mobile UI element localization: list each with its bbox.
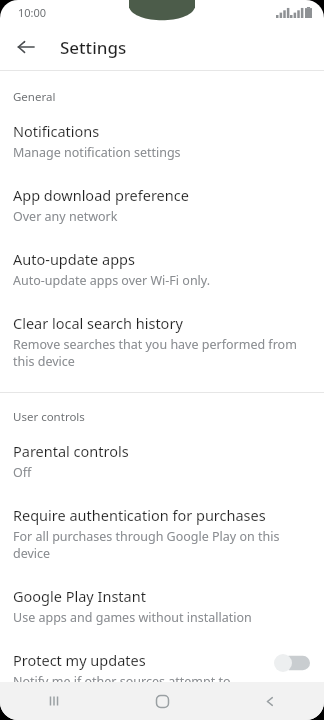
- button[interactable]: App download preference: [0, 185, 324, 225]
- staticText: Protect my updates: [13, 650, 146, 670]
- button[interactable]: Recent apps: [0, 682, 108, 720]
- button[interactable]: Back: [6, 27, 46, 67]
- staticText: 10:00: [18, 5, 47, 20]
- staticText: Manage notification settings: [13, 144, 181, 161]
- button[interactable]: Parental controls: [0, 441, 324, 481]
- staticText: Clear local search history: [13, 313, 183, 333]
- staticText: General: [13, 89, 56, 105]
- button[interactable]: Google Play Instant: [0, 586, 324, 626]
- button[interactable]: Back: [216, 682, 324, 720]
- staticText: Parental controls: [13, 441, 129, 461]
- staticText: Auto-update apps over Wi-Fi only.: [13, 272, 211, 289]
- staticText: Notifications: [13, 121, 100, 141]
- staticText: App download preference: [13, 185, 189, 205]
- button[interactable]: Auto-update apps: [0, 249, 324, 289]
- staticText: Require authentication for purchases: [13, 505, 266, 525]
- staticText: Use apps and games without installation: [13, 609, 252, 626]
- button[interactable]: Protect my updates: [0, 650, 324, 682]
- button[interactable]: Protect my updates toggle: [274, 654, 310, 672]
- staticText: Google Play Instant: [13, 586, 146, 606]
- staticText: Off: [13, 464, 32, 481]
- button[interactable]: Home: [108, 682, 216, 720]
- staticText: For all purchases through Google Play on…: [13, 528, 300, 562]
- button[interactable]: Clear local search history: [0, 313, 324, 370]
- staticText: User controls: [13, 409, 85, 425]
- staticText: Remove searches that you have performed …: [13, 336, 300, 370]
- staticText: Notify me if other sources attempt to up…: [13, 673, 260, 682]
- button[interactable]: Require authentication for purchases: [0, 505, 324, 562]
- button[interactable]: Notifications: [0, 121, 324, 161]
- staticText: Auto-update apps: [13, 249, 135, 269]
- staticText: Settings: [60, 36, 127, 59]
- staticText: Over any network: [13, 208, 118, 225]
